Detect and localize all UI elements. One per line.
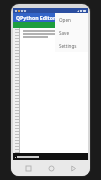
button[interactable] <box>13 22 88 28</box>
button[interactable]: Home <box>45 162 57 174</box>
staticText: Open <box>59 17 71 23</box>
button[interactable] <box>13 153 88 160</box>
button[interactable]: Open <box>55 13 88 26</box>
button[interactable]: Settings <box>55 39 88 52</box>
staticText: Settings <box>59 43 77 49</box>
button[interactable] <box>20 28 88 153</box>
button[interactable]: QPython Editor <box>13 13 88 22</box>
staticText: Save <box>59 30 70 36</box>
button[interactable]: Back <box>67 162 79 174</box>
button[interactable]: Recent apps <box>22 162 34 174</box>
staticText: QPython Editor <box>16 14 56 21</box>
button[interactable]: Save <box>55 26 88 39</box>
